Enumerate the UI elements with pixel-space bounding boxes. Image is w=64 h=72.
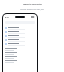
- button[interactable]: [5, 34, 35, 38]
- button[interactable]: [5, 53, 35, 55]
- button[interactable]: [5, 30, 35, 34]
- button[interactable]: [5, 61, 35, 63]
- button[interactable]: [5, 57, 35, 59]
- staticText: Support & Help Center: [23, 3, 42, 5]
- button[interactable]: [5, 38, 35, 42]
- button[interactable]: [5, 51, 35, 53]
- staticText: Find the answers you need, fast: [20, 8, 44, 10]
- button[interactable]: [5, 26, 35, 30]
- button[interactable]: [5, 47, 35, 49]
- button[interactable]: [5, 42, 35, 46]
- button[interactable]: [5, 55, 35, 57]
- staticText: 9:41: [5, 16, 9, 19]
- button[interactable]: [5, 59, 35, 61]
- button[interactable]: [5, 49, 35, 51]
